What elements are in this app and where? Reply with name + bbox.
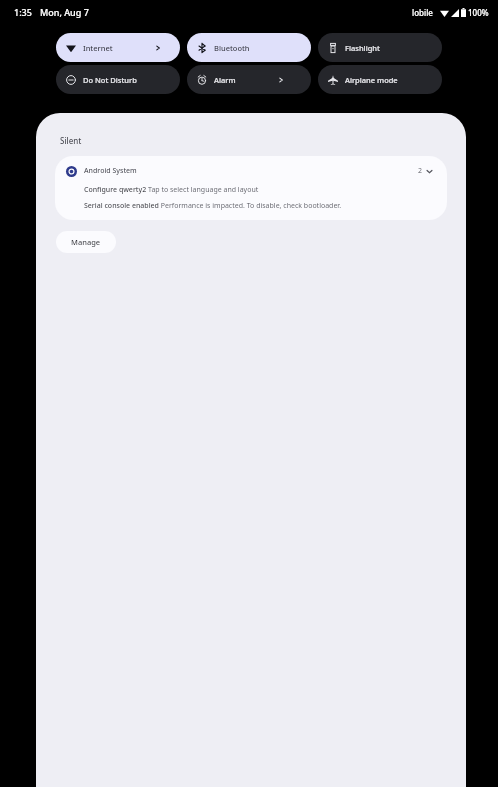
button[interactable]: Android System xyxy=(55,156,447,220)
button[interactable]: Alarm xyxy=(187,65,311,94)
staticText: 2 xyxy=(418,166,423,176)
staticText: Internet xyxy=(83,43,113,53)
button[interactable]: Do Not Disturb xyxy=(56,65,180,94)
staticText: Airplane mode xyxy=(345,75,398,85)
button[interactable]: Flashlight xyxy=(318,33,442,62)
staticText: Silent xyxy=(60,135,82,146)
button[interactable]: Internet xyxy=(56,33,180,62)
staticText: 1:35 xyxy=(14,6,32,18)
button[interactable]: Airplane mode xyxy=(318,65,442,94)
staticText: Do Not Disturb xyxy=(83,75,137,85)
staticText: Mon, Aug 7 xyxy=(40,6,89,18)
button[interactable]: Bluetooth xyxy=(187,33,311,62)
button[interactable]: Expand notification group xyxy=(414,164,437,178)
staticText: Configure qwerty2 Tap to select language… xyxy=(84,185,259,195)
staticText: Alarm xyxy=(214,75,236,85)
staticText: lobile xyxy=(412,7,433,18)
staticText: Flashlight xyxy=(345,43,380,53)
button[interactable]: Manage xyxy=(56,231,116,253)
staticText: Serial console enabled Performance is im… xyxy=(84,201,342,211)
staticText: Android System xyxy=(84,166,137,176)
staticText: Bluetooth xyxy=(214,43,250,53)
staticText: Manage xyxy=(71,237,101,247)
staticText: 100% xyxy=(468,7,489,18)
